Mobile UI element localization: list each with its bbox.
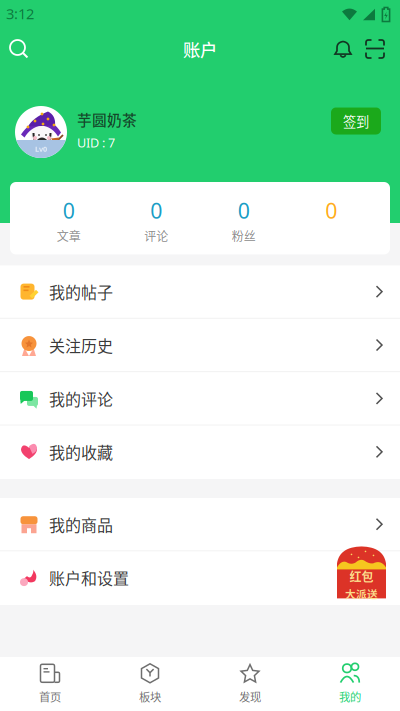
button[interactable]: 我的商品 bbox=[0, 498, 400, 551]
button[interactable]: 账户和设置 bbox=[0, 551, 400, 605]
staticText: 我的评论 bbox=[49, 387, 113, 410]
staticText: 芋圆奶茶 bbox=[77, 109, 137, 130]
button[interactable]: 关注历史 bbox=[0, 319, 400, 372]
staticText: UID : 7 bbox=[77, 134, 115, 151]
staticText: 红包 bbox=[349, 567, 373, 585]
staticText: 0 bbox=[150, 196, 162, 225]
button[interactable]: Search bbox=[0, 29, 38, 69]
staticText: 账户 bbox=[183, 36, 217, 62]
button[interactable]: 我的评论 bbox=[0, 372, 400, 426]
staticText: 关注历史 bbox=[49, 333, 113, 357]
staticText: 文章 bbox=[57, 227, 81, 244]
staticText: 大派送 bbox=[345, 586, 378, 601]
button[interactable]: 我的收藏 bbox=[0, 426, 400, 479]
button[interactable]: 我的 bbox=[300, 657, 400, 711]
staticText: 我的收藏 bbox=[49, 440, 113, 463]
staticText: 账户和设置 bbox=[49, 566, 129, 589]
staticText: 评论 bbox=[144, 227, 168, 244]
staticText: 签到 bbox=[343, 111, 369, 131]
staticText: 0 bbox=[325, 196, 337, 225]
staticText: 0 bbox=[238, 196, 250, 225]
button[interactable]: 首页 bbox=[0, 657, 100, 711]
button[interactable]: Scan bbox=[359, 29, 391, 69]
staticText: 粉丝 bbox=[232, 227, 256, 244]
button[interactable]: 红包大派送 bbox=[337, 546, 386, 598]
staticText: 板块 bbox=[139, 688, 161, 705]
button[interactable]: 板块 bbox=[100, 657, 200, 711]
button[interactable]: Notifications bbox=[327, 29, 359, 69]
button[interactable]: 我的帖子 bbox=[0, 265, 400, 319]
staticText: Lv0 bbox=[35, 144, 47, 154]
button[interactable]: 发现 bbox=[200, 657, 300, 711]
staticText: 我的 bbox=[339, 688, 361, 705]
staticText: 0 bbox=[63, 196, 75, 225]
staticText: 发现 bbox=[239, 688, 261, 705]
staticText: 3:12 bbox=[6, 3, 34, 23]
staticText: 我的商品 bbox=[49, 513, 113, 536]
staticText: 我的帖子 bbox=[49, 280, 113, 303]
button[interactable]: 签到 bbox=[331, 107, 381, 134]
staticText: 首页 bbox=[39, 688, 61, 705]
